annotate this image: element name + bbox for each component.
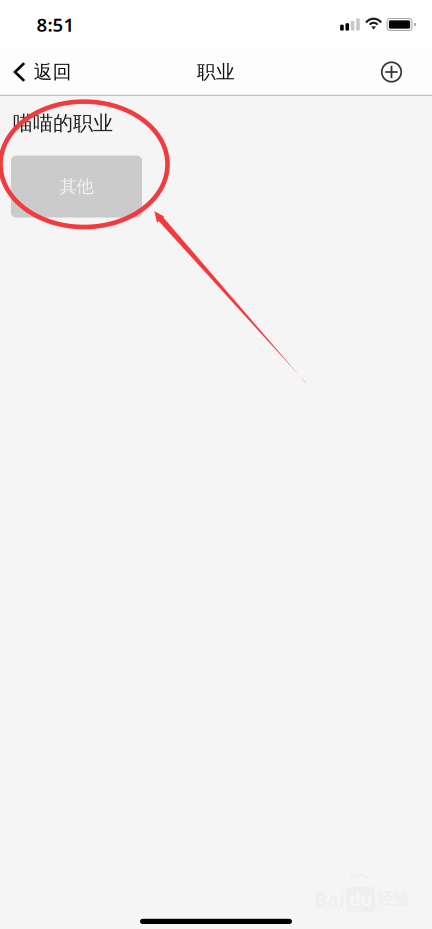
staticText: 职业 (197, 60, 235, 83)
button[interactable]: Add (369, 50, 413, 94)
staticText: 8:51 (36, 12, 74, 37)
staticText: 其他 (59, 176, 93, 197)
staticText: 喵喵的职业 (13, 111, 113, 136)
staticText: du (349, 888, 371, 911)
staticText: 返回 (34, 60, 72, 83)
button[interactable]: 其他 (11, 156, 142, 218)
button[interactable]: 返回 (0, 50, 84, 94)
